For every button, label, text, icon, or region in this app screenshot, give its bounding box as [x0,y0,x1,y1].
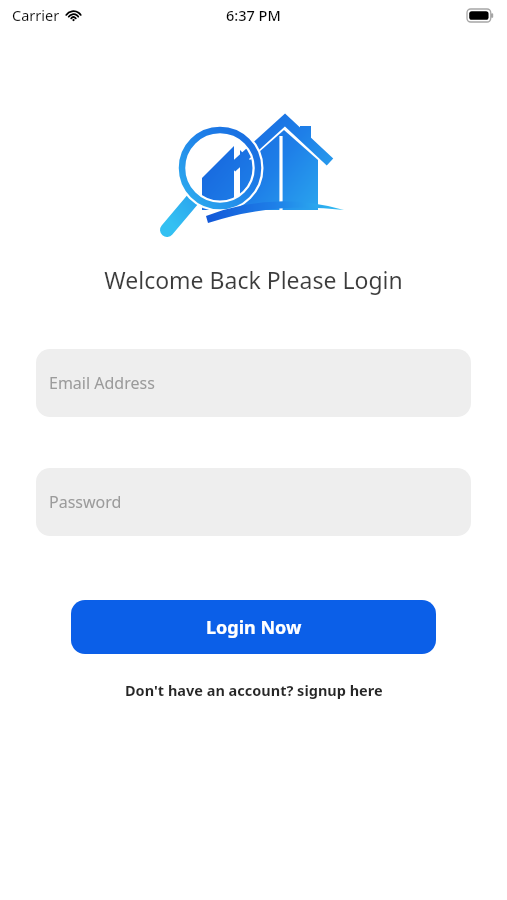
staticText: Welcome Back Please Login [0,264,507,295]
button[interactable]: Login Now [71,600,436,654]
button[interactable]: Don't have an account? signup here [115,676,393,704]
button[interactable]: Password [36,468,471,536]
staticText: Login Now [206,615,302,640]
staticText: Email Address [49,372,155,394]
staticText: Carrier [12,5,60,25]
staticText: Password [49,491,122,513]
staticText: Don't have an account? signup here [125,680,383,700]
button[interactable]: Email Address [36,349,471,417]
staticText: 6:37 PM [226,5,281,25]
